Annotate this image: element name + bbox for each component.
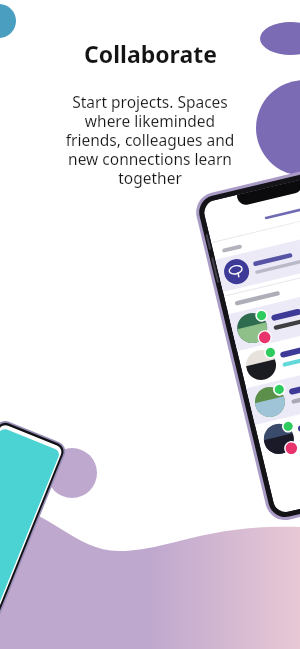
staticText: Start projects. Spaces where likeminded … bbox=[18, 91, 282, 188]
button[interactable]: Collaborate bbox=[0, 0, 300, 649]
staticText: Collaborate bbox=[84, 38, 217, 69]
